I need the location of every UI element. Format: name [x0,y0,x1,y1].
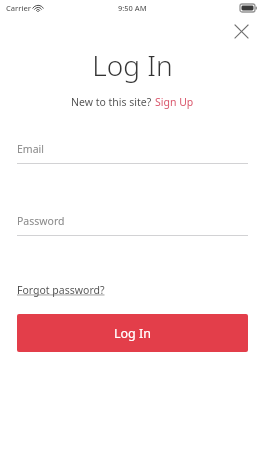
button[interactable]: Close [230,20,252,42]
staticText: 9:50 AM [118,3,147,13]
staticText: Forgot password? [17,283,105,297]
staticText: Sign Up [155,95,194,109]
staticText: Log In [0,46,265,84]
button[interactable]: Forgot password? [17,283,105,297]
button[interactable]: Password [17,214,248,236]
staticText: Password [17,214,65,228]
button[interactable]: Email [17,142,248,164]
staticText: Email [17,142,44,156]
staticText: New to this site? [71,95,155,109]
button[interactable]: Log In [17,314,248,352]
staticText: Carrier [6,3,31,13]
button[interactable]: Sign Up [155,95,194,109]
staticText: Log In [114,325,152,342]
